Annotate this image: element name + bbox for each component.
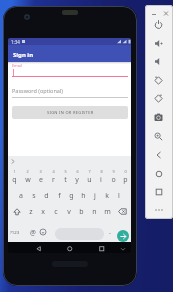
button[interactable]: d — [40, 188, 53, 203]
button[interactable]: 5 — [59, 169, 71, 187]
button[interactable]: 1 — [8, 169, 21, 187]
button[interactable]: l — [113, 188, 125, 203]
button[interactable] — [151, 129, 166, 143]
button[interactable]: z — [25, 204, 37, 219]
button[interactable]: f — [53, 188, 65, 203]
staticText: c — [54, 207, 58, 217]
staticText: l — [118, 191, 120, 201]
staticText: Password (optional) — [12, 87, 63, 94]
button[interactable] — [151, 110, 166, 124]
staticText: f — [58, 191, 61, 201]
button[interactable] — [151, 36, 166, 50]
staticText: 4 — [52, 169, 55, 174]
button[interactable]: v — [62, 204, 75, 219]
staticText: Email — [12, 63, 22, 68]
staticText: g — [69, 191, 74, 201]
staticText: ?123 — [10, 229, 20, 235]
staticText: 1:34 — [11, 39, 20, 45]
button[interactable]: b — [75, 204, 88, 219]
staticText: q — [12, 175, 17, 185]
button[interactable]: 6 — [71, 169, 83, 187]
button[interactable]: 9 — [107, 169, 119, 187]
button[interactable] — [151, 148, 166, 162]
staticText: j — [94, 191, 96, 201]
staticText: 2 — [26, 169, 29, 174]
staticText: d — [44, 191, 49, 201]
button[interactable] — [55, 228, 104, 240]
button[interactable]: 7 — [83, 169, 95, 187]
button[interactable] — [151, 17, 166, 31]
button[interactable]: 8 — [95, 169, 107, 187]
staticText: k — [105, 191, 109, 201]
button[interactable]: @ — [27, 225, 38, 239]
staticText: 6 — [76, 169, 79, 174]
button[interactable] — [151, 10, 169, 18]
button[interactable] — [117, 230, 129, 242]
button[interactable] — [99, 246, 105, 252]
button[interactable]: Password (optional) — [8, 82, 131, 99]
button[interactable]: s — [27, 188, 40, 203]
staticText: o — [111, 175, 116, 185]
button[interactable]: 2 — [21, 169, 34, 187]
staticText: Sign in — [13, 51, 34, 59]
button[interactable] — [151, 167, 166, 181]
button[interactable] — [67, 246, 73, 252]
button[interactable]: 0 — [119, 169, 131, 187]
staticText: 9 — [112, 169, 115, 174]
staticText: i — [100, 175, 102, 185]
button[interactable]: c — [49, 204, 62, 219]
button[interactable]: a — [14, 188, 27, 203]
staticText: m — [104, 207, 111, 217]
staticText: 3 — [39, 169, 42, 174]
button[interactable]: Email — [8, 62, 131, 78]
button[interactable]: . — [105, 225, 115, 238]
button[interactable]: ?123 — [8, 225, 22, 238]
staticText: 0 — [124, 169, 127, 174]
staticText: z — [29, 207, 33, 217]
staticText: x — [41, 207, 45, 217]
staticText: b — [79, 207, 84, 217]
button[interactable]: m — [101, 204, 114, 219]
staticText: @ — [30, 228, 36, 237]
staticText: n — [92, 207, 97, 217]
button[interactable]: SIGN IN OR REGISTER — [12, 106, 128, 119]
button[interactable] — [151, 54, 166, 68]
button[interactable]: 3 — [34, 169, 47, 187]
button[interactable]: g — [65, 188, 77, 203]
button[interactable]: x — [37, 204, 49, 219]
staticText: u — [87, 175, 92, 185]
staticText: e — [39, 175, 43, 185]
staticText: 1 — [13, 169, 16, 174]
staticText: y — [75, 175, 79, 185]
button[interactable]: j — [89, 188, 101, 203]
button[interactable]: k — [101, 188, 113, 203]
button[interactable] — [36, 246, 42, 252]
button[interactable] — [114, 204, 131, 219]
button[interactable]: 4 — [47, 169, 59, 187]
button[interactable] — [151, 91, 166, 105]
staticText: 7 — [88, 169, 91, 174]
staticText: SIGN IN OR REGISTER — [47, 110, 94, 115]
staticText: h — [81, 191, 86, 201]
button[interactable] — [8, 204, 25, 219]
staticText: a — [19, 191, 23, 201]
button[interactable]: h — [77, 188, 89, 203]
staticText: w — [25, 175, 31, 185]
staticText: v — [67, 207, 71, 217]
button[interactable] — [151, 203, 166, 217]
staticText: r — [52, 175, 55, 185]
staticText: . — [109, 227, 111, 237]
button[interactable] — [120, 247, 126, 252]
button[interactable] — [151, 73, 166, 87]
staticText: t — [64, 175, 67, 185]
button[interactable]: n — [88, 204, 101, 219]
button[interactable] — [151, 185, 166, 199]
button[interactable] — [39, 228, 47, 236]
staticText: p — [123, 175, 128, 185]
staticText: 5 — [64, 169, 67, 174]
staticText: s — [32, 191, 36, 201]
staticText: 8 — [100, 169, 103, 174]
